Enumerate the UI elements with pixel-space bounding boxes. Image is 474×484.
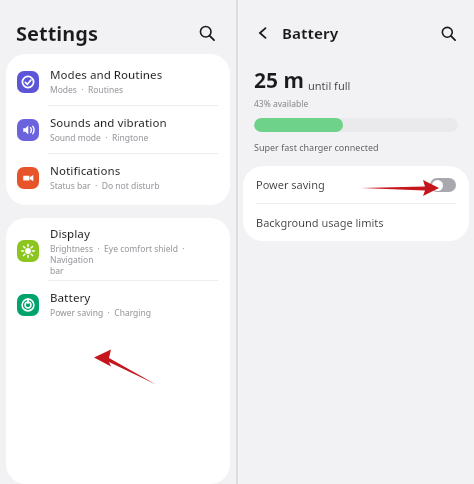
staticText: Super fast charger connected [254, 141, 379, 153]
staticText: Modes and Routines [50, 67, 163, 83]
staticText: Sounds and vibration [50, 115, 167, 131]
staticText: Battery [50, 290, 91, 306]
button[interactable]: Notifications [6, 154, 230, 201]
staticText: Background usage limits [256, 215, 384, 230]
staticText: Sound mode · Ringtone [50, 132, 149, 144]
staticText: Brightness · Eye comfort shield · Naviga… [50, 243, 220, 276]
staticText: until full [308, 78, 351, 93]
staticText: Power saving · Charging [50, 307, 151, 319]
staticText: Modes · Routines [50, 84, 124, 96]
staticText: Settings [16, 20, 98, 47]
button[interactable]: Back [252, 22, 274, 44]
button[interactable]: Background usage limits [243, 204, 469, 241]
button[interactable]: Display [6, 222, 230, 280]
button[interactable]: Modes and Routines [6, 58, 230, 105]
staticText: Power saving [256, 177, 325, 192]
button[interactable]: Search [194, 20, 220, 46]
staticText: Status bar · Do not disturb [50, 180, 160, 192]
staticText: Notifications [50, 163, 121, 179]
button[interactable]: Sounds and vibration [6, 106, 230, 153]
staticText: 25 m [254, 66, 304, 95]
button[interactable]: Search [436, 21, 460, 45]
staticText: Battery [282, 23, 339, 43]
button[interactable]: Battery [6, 281, 230, 480]
button[interactable]: Power saving [243, 166, 469, 203]
button[interactable]: Toggle off [430, 178, 456, 192]
staticText: Display [50, 226, 90, 242]
staticText: 43% available [254, 98, 309, 110]
